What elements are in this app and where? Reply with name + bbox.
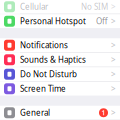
staticText: No SIM bbox=[81, 1, 108, 12]
button[interactable]: Do Not Disturb bbox=[0, 67, 120, 81]
staticText: > bbox=[111, 40, 116, 50]
staticText: Screen Time bbox=[20, 83, 66, 94]
staticText: Notifications bbox=[20, 40, 68, 50]
staticText: Off bbox=[96, 16, 108, 26]
button[interactable]: Screen Time bbox=[0, 82, 120, 96]
button[interactable]: Cellular bbox=[0, 0, 120, 14]
staticText: > bbox=[111, 1, 116, 12]
button[interactable]: Sounds & Haptics bbox=[0, 53, 120, 67]
button[interactable]: Notifications bbox=[0, 38, 120, 52]
staticText: Sounds & Haptics bbox=[20, 54, 86, 65]
staticText: > bbox=[111, 69, 116, 79]
staticText: > bbox=[111, 16, 116, 26]
button[interactable]: General bbox=[0, 106, 120, 120]
staticText: > bbox=[111, 107, 116, 118]
staticText: > bbox=[111, 54, 116, 65]
staticText: 1 bbox=[101, 108, 105, 117]
staticText: Personal Hotspot bbox=[20, 16, 86, 26]
button[interactable]: Personal Hotspot bbox=[0, 14, 120, 28]
staticText: Cellular bbox=[20, 1, 48, 12]
staticText: Do Not Disturb bbox=[20, 69, 77, 79]
staticText: General bbox=[20, 107, 50, 118]
staticText: > bbox=[111, 83, 116, 94]
